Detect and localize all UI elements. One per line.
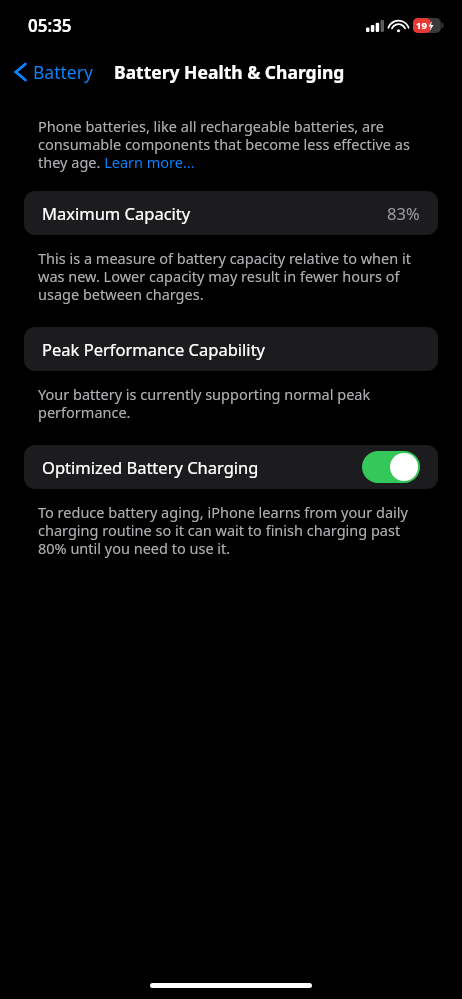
staticText: 19: [416, 19, 427, 32]
staticText: Optimized Battery Charging: [42, 456, 362, 478]
staticText: Battery: [33, 60, 93, 84]
staticText: Battery Health & Charging: [114, 60, 345, 84]
staticText: Phone batteries, like all rechargeable b…: [38, 116, 426, 172]
staticText: This is a measure of battery capacity re…: [38, 248, 426, 304]
button[interactable]: Optimized Battery Charging toggle: [362, 451, 420, 483]
button[interactable]: Maximum Capacity: [24, 191, 438, 235]
button[interactable]: Peak Performance Capability: [24, 327, 438, 371]
staticText: 83%: [387, 202, 420, 224]
staticText: 05:35: [28, 14, 72, 37]
staticText: Maximum Capacity: [42, 202, 387, 224]
staticText: Peak Performance Capability: [42, 338, 420, 360]
staticText: To reduce battery aging, iPhone learns f…: [38, 502, 426, 558]
staticText: Your battery is currently supporting nor…: [38, 384, 426, 422]
button[interactable]: Optimized Battery Charging: [24, 445, 438, 489]
button[interactable]: Battery: [10, 58, 99, 86]
